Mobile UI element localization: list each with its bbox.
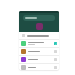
button[interactable]: Account — [36, 23, 43, 30]
button[interactable]: Select — [19, 40, 59, 47]
button[interactable] — [19, 32, 59, 39]
button[interactable]: Select — [54, 42, 57, 45]
button[interactable]: Select — [19, 48, 59, 55]
button[interactable]: Select — [19, 64, 59, 70]
button[interactable]: Select — [19, 56, 59, 63]
button[interactable] — [23, 15, 55, 21]
